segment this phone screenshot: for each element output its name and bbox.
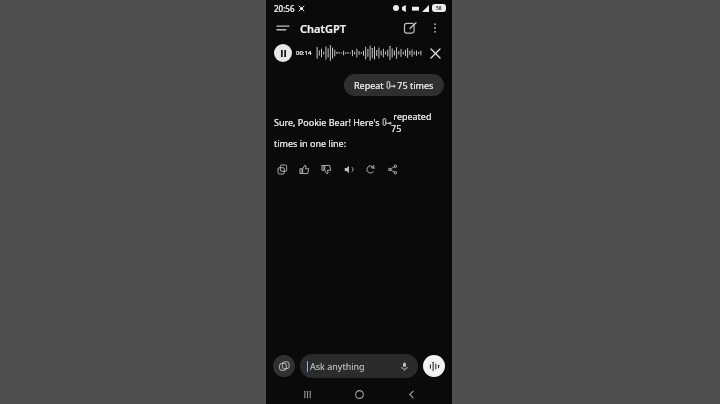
button[interactable]: Close player [426, 44, 444, 62]
button[interactable]: Attach [273, 355, 295, 377]
staticText: times in one line: [274, 137, 347, 149]
button[interactable]: Ask anything [300, 354, 418, 378]
button[interactable]: Read aloud [340, 161, 356, 177]
staticText: repeated 75 [391, 110, 438, 134]
staticText: 75 times [395, 79, 434, 91]
staticText: 00:14 [296, 49, 312, 57]
staticText: Ask anything [310, 360, 365, 372]
button[interactable]: Copy [274, 161, 290, 177]
button[interactable]: Home [348, 384, 370, 404]
button[interactable]: New chat [400, 18, 420, 38]
button[interactable]: Bad response [318, 161, 334, 177]
staticText: ChatGPT [300, 21, 346, 36]
staticText: Repeat [354, 79, 386, 91]
button[interactable]: Voice mode [423, 355, 445, 377]
button[interactable]: Share [384, 161, 400, 177]
staticText: Sure, Pookie Bear! Here's [274, 116, 382, 128]
button[interactable]: Voice input [397, 359, 411, 373]
staticText: 58 [436, 5, 442, 12]
button[interactable]: Repeat [344, 74, 444, 96]
staticText: 20:56 [274, 3, 295, 14]
button[interactable]: Pause [274, 44, 292, 62]
button[interactable]: Regenerate [362, 161, 378, 177]
button[interactable]: Back [400, 384, 422, 404]
button[interactable]: Good response [296, 161, 312, 177]
button[interactable]: More options [426, 19, 444, 37]
button[interactable]: Menu [274, 19, 292, 37]
button[interactable]: Recents [296, 384, 318, 404]
